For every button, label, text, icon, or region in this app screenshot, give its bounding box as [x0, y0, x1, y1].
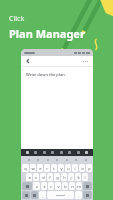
staticText: r — [46, 166, 48, 171]
button[interactable]: m — [76, 182, 82, 190]
button[interactable]: Suggestion 7 — [84, 158, 88, 162]
staticText: k — [77, 175, 80, 180]
staticText: y — [60, 166, 63, 171]
button[interactable]: f — [47, 173, 53, 181]
button[interactable]: Tool 3 — [42, 150, 47, 155]
button[interactable]: q — [22, 164, 29, 172]
staticText: b — [64, 184, 67, 189]
staticText: l — [84, 175, 86, 180]
button[interactable]: Tool 5 — [59, 150, 64, 155]
staticText: Click — [9, 14, 25, 24]
button[interactable]: a — [26, 173, 32, 181]
button[interactable]: u — [65, 164, 71, 172]
button[interactable]: Suggestion 6 — [74, 158, 78, 162]
button[interactable]: w — [30, 164, 36, 172]
button[interactable]: d — [40, 173, 46, 181]
button[interactable]: e — [37, 164, 43, 172]
button[interactable]: Tool 8 — [84, 150, 89, 155]
button[interactable]: r — [44, 164, 50, 172]
button[interactable]: p — [86, 164, 92, 172]
button[interactable]: Tool 2 — [33, 150, 38, 155]
staticText: v — [57, 184, 60, 189]
staticText: u — [67, 166, 70, 171]
staticText: c — [50, 184, 52, 189]
button[interactable]: Suggestion 3 — [46, 158, 50, 162]
button[interactable]: , — [39, 191, 46, 199]
button[interactable]: Enter — [83, 191, 92, 199]
button[interactable]: . — [75, 191, 82, 199]
button[interactable]: s — [33, 173, 39, 181]
staticText: f — [49, 175, 51, 180]
button[interactable]: n — [69, 182, 75, 190]
button[interactable]: Tool 1 — [25, 150, 30, 155]
staticText: t — [53, 166, 55, 171]
button[interactable]: l — [82, 173, 88, 181]
button[interactable]: i — [72, 164, 78, 172]
staticText: g — [56, 175, 59, 180]
button[interactable]: Tool 6 — [67, 150, 72, 155]
staticText: q — [24, 166, 27, 171]
button[interactable]: g — [54, 173, 60, 181]
staticText: a — [28, 175, 31, 180]
button[interactable]: o — [79, 164, 85, 172]
button[interactable]: t — [51, 164, 57, 172]
staticText: p — [88, 166, 91, 171]
button[interactable]: Tool 7 — [76, 150, 81, 155]
staticText: d — [42, 175, 45, 180]
button[interactable]: h — [61, 173, 67, 181]
button[interactable]: k — [75, 173, 81, 181]
button[interactable]: Emoji — [31, 191, 38, 199]
button[interactable]: j — [68, 173, 74, 181]
staticText: Write down the plan — [26, 72, 65, 77]
button[interactable]: v — [55, 182, 61, 190]
button[interactable]: Suggestion 5 — [65, 158, 69, 162]
staticText: j — [70, 175, 72, 180]
staticText: s — [35, 175, 37, 180]
button[interactable]: More options — [81, 57, 90, 66]
button[interactable]: Suggestion 1 — [27, 158, 31, 162]
button[interactable]: Suggestion 2 — [36, 158, 40, 162]
staticText: z — [36, 184, 38, 189]
button[interactable]: Backspace — [83, 182, 92, 190]
staticText: x — [43, 184, 46, 189]
button[interactable]: c — [48, 182, 54, 190]
staticText: o — [81, 166, 84, 171]
button[interactable]: Back — [24, 57, 32, 65]
staticText: e — [39, 166, 42, 171]
staticText: , — [42, 193, 44, 198]
button[interactable]: Numbers — [22, 191, 30, 199]
staticText: w — [31, 166, 35, 171]
button[interactable]: Space — [47, 191, 74, 199]
staticText: Plan Manager — [9, 26, 85, 41]
button[interactable]: Tool 4 — [50, 150, 55, 155]
staticText: m — [77, 184, 81, 189]
button[interactable]: y — [58, 164, 64, 172]
staticText: i — [74, 166, 76, 171]
button[interactable]: x — [41, 182, 47, 190]
button[interactable]: Suggestion 4 — [55, 158, 59, 162]
staticText: n — [71, 184, 74, 189]
button[interactable]: b — [62, 182, 68, 190]
staticText: h — [63, 175, 66, 180]
button[interactable]: z — [33, 182, 40, 190]
button[interactable]: Shift — [22, 182, 32, 190]
staticText: . — [78, 193, 80, 198]
